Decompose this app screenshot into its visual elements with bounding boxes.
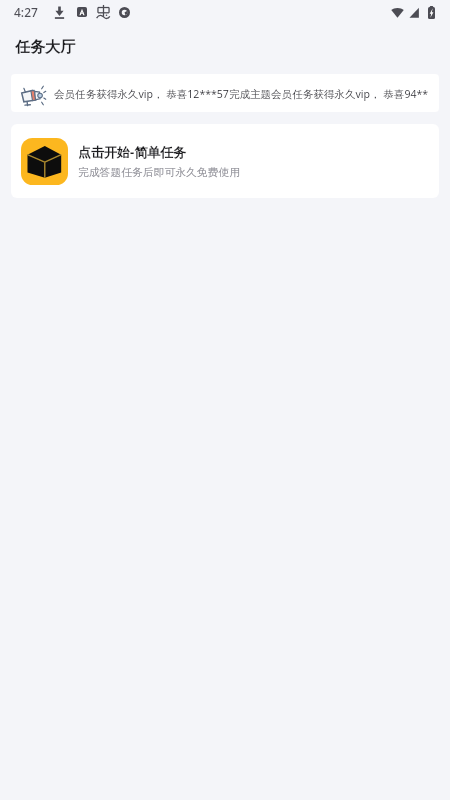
button[interactable]: Announcement	[11, 74, 439, 112]
other: Mobile signal	[409, 7, 419, 18]
staticText: 点击开始-简单任务	[78, 143, 187, 161]
other: Sync status	[119, 7, 130, 18]
staticText: 会员任务获得永久vip， 恭喜12***57完成主题会员任务获得永久vip， 恭…	[54, 87, 429, 101]
staticText: 任务大厅	[15, 38, 75, 57]
staticText: 4:27	[14, 4, 38, 20]
button[interactable]: 点击开始-简单任务	[11, 124, 439, 198]
other: Wi-Fi	[391, 7, 404, 18]
other: Announcement	[19, 85, 46, 106]
other: Debug mode	[96, 4, 111, 20]
staticText: 完成答题任务后即可永久免费使用	[78, 166, 240, 180]
other: Battery charging	[428, 6, 435, 19]
other: App notification	[77, 7, 87, 17]
other: Downloading	[54, 6, 65, 19]
